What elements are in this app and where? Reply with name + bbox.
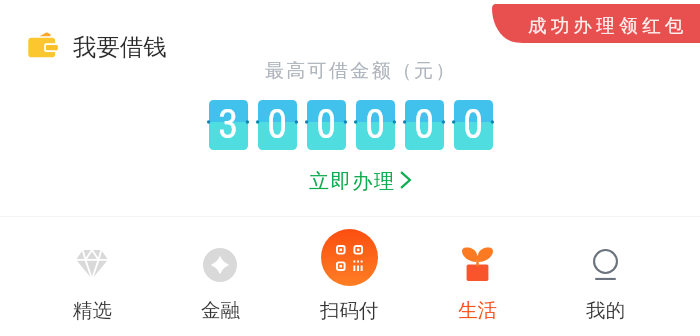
staticText: 3 xyxy=(218,100,239,148)
staticText: 0 xyxy=(316,100,337,148)
button[interactable]: Wallet xyxy=(18,26,168,66)
button[interactable]: 精选 xyxy=(37,228,147,332)
staticText: 精选 xyxy=(73,298,112,323)
button[interactable]: 立即办理 xyxy=(309,169,409,194)
staticText: 生活 xyxy=(458,298,497,323)
staticText: 成功办理领红包 xyxy=(528,14,688,37)
button[interactable]: 生活 xyxy=(422,228,532,332)
other: Wallet xyxy=(20,21,59,60)
other: 精选 xyxy=(76,250,108,279)
staticText: 立即办理 xyxy=(309,169,396,194)
other: 扫码付 xyxy=(321,229,378,286)
button[interactable]: 金融 xyxy=(165,228,275,332)
staticText: 金融 xyxy=(201,298,240,323)
staticText: 扫码付 xyxy=(320,298,379,323)
staticText: 0 xyxy=(414,100,435,148)
other: 金融 xyxy=(203,248,237,282)
button[interactable]: 扫码付 xyxy=(294,228,404,332)
staticText: 我要借钱 xyxy=(73,32,167,62)
button[interactable]: 成功办理领红包 xyxy=(492,4,700,43)
other: 生活 xyxy=(461,246,494,281)
other: 我的 xyxy=(593,249,618,280)
staticText: 最高可借金额（元） xyxy=(265,59,457,83)
staticText: 0 xyxy=(365,100,386,148)
staticText: 0 xyxy=(463,100,484,148)
staticText: 0 xyxy=(267,100,288,148)
button[interactable]: 我的 xyxy=(550,228,660,332)
staticText: 我的 xyxy=(586,298,625,323)
